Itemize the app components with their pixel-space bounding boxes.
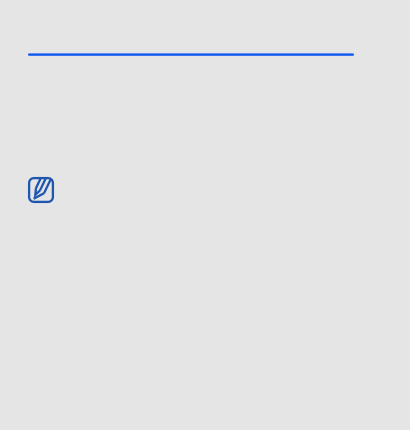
button[interactable]: Compose <box>28 177 54 203</box>
